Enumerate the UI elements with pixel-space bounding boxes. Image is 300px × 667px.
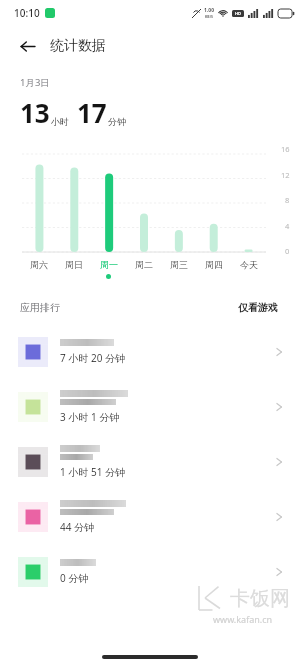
staticText: 周六 [30,259,48,270]
staticText: 10:10 [14,6,40,20]
other: Details [272,455,286,469]
other: Details [272,565,286,579]
staticText: 今天 [240,259,258,270]
staticText: 1 小时 51 分钟 [60,465,125,479]
staticText: 44 分钟 [60,520,95,534]
staticText: 卡饭网 [230,586,290,611]
staticText: 16 [281,144,290,154]
staticText: KB/S [205,14,214,19]
staticText: 8 [285,195,290,205]
staticText: 周四 [205,259,223,270]
staticText: 1月3日 [20,76,50,89]
staticText: 应用排行 [20,301,60,314]
button[interactable]: 今天 [231,259,266,279]
staticText: 0 [285,246,290,256]
staticText: 周二 [135,259,153,270]
staticText: 17 [77,95,107,130]
staticText: 4 [285,221,290,231]
button[interactable]: 周一 [91,259,126,279]
button[interactable]: 7 小时 20 分钟 [0,324,300,379]
staticText: 统计数据 [50,37,106,55]
button[interactable]: 周四 [196,259,231,279]
staticText: 周三 [170,259,188,270]
button[interactable]: 周二 [126,259,161,279]
button[interactable]: 0 分钟 [0,544,300,599]
staticText: 仅看游戏 [238,301,278,314]
button[interactable]: 周六 [22,259,56,279]
other: Details [272,510,286,524]
staticText: 周一 [100,259,118,270]
staticText: 分钟 [108,116,126,127]
button[interactable]: 1 小时 51 分钟 [0,434,300,489]
staticText: 3 小时 1 分钟 [60,410,120,424]
staticText: 13 [20,95,50,130]
button[interactable]: 周日 [56,259,91,279]
button[interactable]: 44 分钟 [0,489,300,544]
button[interactable]: 周三 [161,259,196,279]
other: Details [272,345,286,359]
other: Details [272,400,286,414]
staticText: 12 [281,170,290,180]
staticText: www.kafan.cn [213,613,273,625]
staticText: 0 分钟 [60,571,89,585]
staticText: 1.00 [204,7,214,14]
button[interactable]: Back [12,31,42,61]
button[interactable]: 仅看游戏 [234,297,282,318]
staticText: 7 小时 20 分钟 [60,351,125,365]
staticText: HD [235,11,241,16]
staticText: 周日 [65,259,83,270]
button[interactable]: 3 小时 1 分钟 [0,379,300,434]
staticText: 小时 [51,116,69,127]
